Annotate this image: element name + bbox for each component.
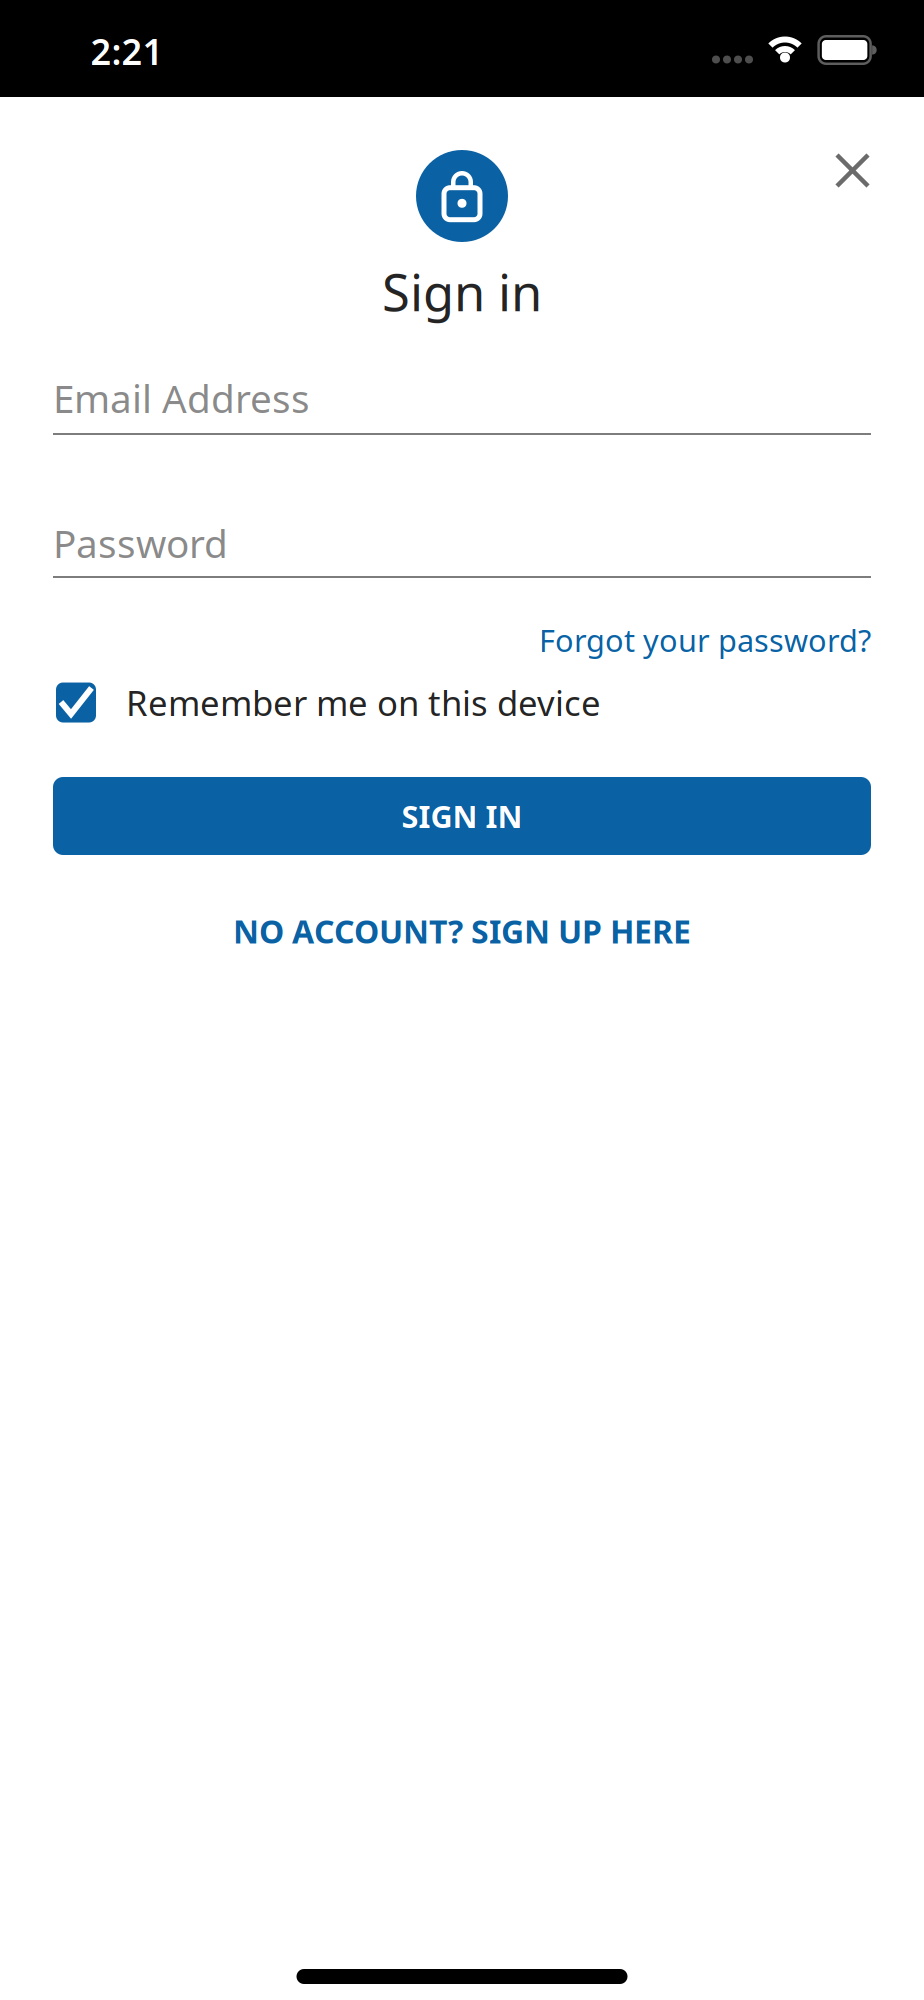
staticText: Remember me on this device (126, 679, 601, 725)
staticText: SIGN IN (401, 796, 522, 836)
button[interactable]: NO ACCOUNT? SIGN UP HERE (233, 910, 691, 952)
button[interactable]: SIGN IN (53, 777, 871, 855)
staticText: 2:21 (90, 27, 163, 75)
button[interactable]: Forgot your password? (471, 620, 871, 660)
staticText: Forgot your password? (539, 620, 871, 660)
button[interactable] (828, 146, 877, 195)
staticText: NO ACCOUNT? SIGN UP HERE (233, 910, 691, 952)
staticText: Email Address (53, 372, 310, 424)
staticText: Sign in (382, 258, 542, 325)
staticText: Password (53, 517, 228, 569)
button[interactable]: Remember me on this device (53, 674, 626, 730)
